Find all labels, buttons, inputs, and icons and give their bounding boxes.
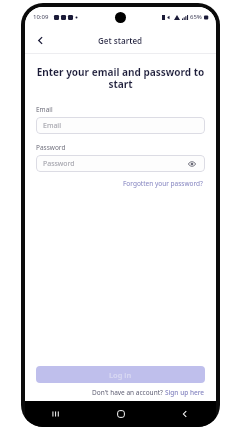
staticText: Email (43, 121, 61, 131)
button[interactable]: Log in (36, 366, 205, 383)
button[interactable]: Home (112, 405, 130, 423)
button[interactable]: Password (36, 155, 205, 172)
staticText: 10:09 (33, 13, 49, 21)
staticText: 65% (190, 13, 202, 21)
button[interactable]: Recent apps (47, 405, 65, 423)
staticText: Password (36, 143, 66, 152)
button[interactable]: Email (36, 117, 205, 134)
staticText: Email (36, 105, 53, 114)
staticText: Don't have an account? (92, 388, 165, 397)
staticText: Log in (109, 370, 132, 380)
button[interactable]: Show password (186, 158, 198, 170)
staticText: Get started (98, 35, 143, 46)
button[interactable]: Back (176, 405, 194, 423)
button[interactable]: Forgotten your password? (121, 178, 205, 189)
staticText: Sign up here (165, 388, 205, 397)
staticText: Forgotten your password? (123, 179, 203, 188)
staticText: Password (43, 159, 75, 169)
button[interactable]: Back (30, 30, 50, 50)
button[interactable]: Sign up here (165, 388, 205, 397)
staticText: Enter your email and password to start (36, 65, 205, 91)
